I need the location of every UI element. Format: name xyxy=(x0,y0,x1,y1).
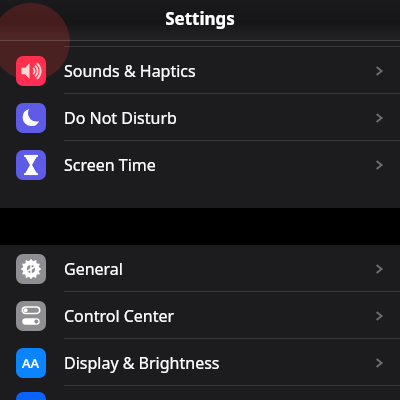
staticText: Do Not Disturb xyxy=(64,107,177,129)
staticText: Display & Brightness xyxy=(64,352,220,374)
button[interactable] xyxy=(0,386,400,400)
staticText: Control Center xyxy=(64,305,175,327)
staticText: AA xyxy=(22,354,40,372)
button[interactable]: AA xyxy=(0,339,400,386)
button[interactable]: Sounds & Haptics xyxy=(0,47,400,94)
button[interactable]: General xyxy=(0,245,400,292)
staticText: Notifications xyxy=(64,13,160,35)
button[interactable]: Control Center xyxy=(0,292,400,339)
staticText: Settings xyxy=(165,7,235,30)
staticText: Sounds & Haptics xyxy=(64,60,196,82)
button[interactable]: Do Not Disturb xyxy=(0,94,400,141)
button[interactable]: Notifications xyxy=(0,0,400,47)
button[interactable]: Screen Time xyxy=(0,141,400,188)
staticText: Screen Time xyxy=(64,154,156,176)
staticText: General xyxy=(64,258,123,280)
